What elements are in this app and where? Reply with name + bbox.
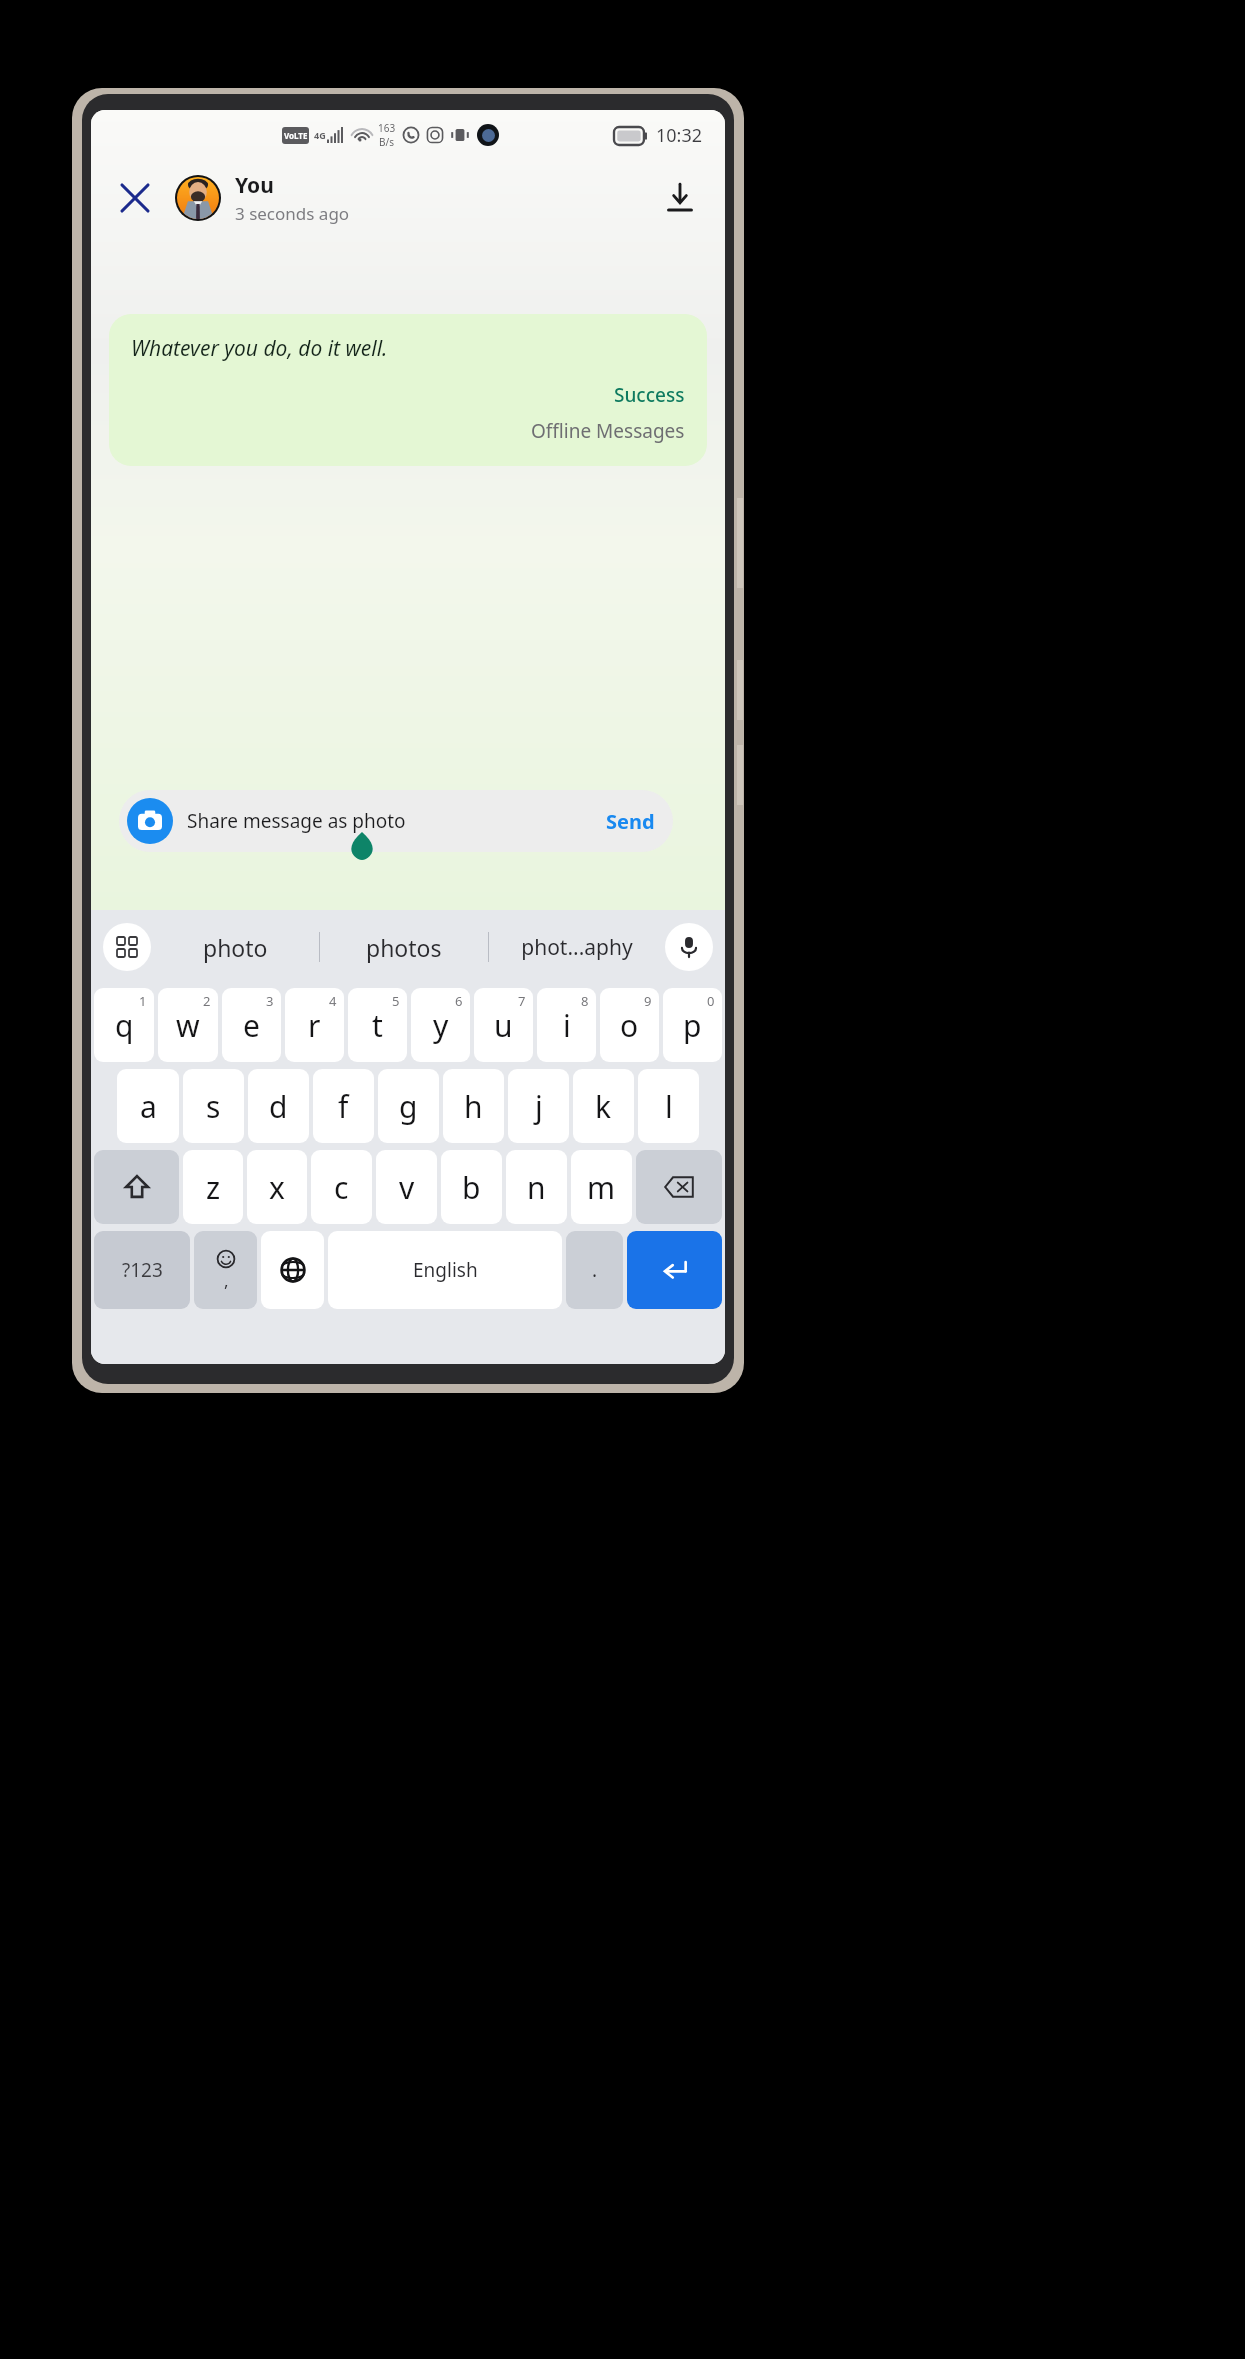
staticText: a — [140, 1086, 157, 1127]
staticText: 4G — [314, 129, 326, 141]
staticText: B/s — [379, 135, 395, 149]
button[interactable]: o — [600, 988, 659, 1062]
staticText: r — [308, 1005, 321, 1046]
staticText: 7 — [518, 992, 526, 1010]
button[interactable]: s — [183, 1069, 244, 1143]
button[interactable]: b — [441, 1150, 502, 1224]
button[interactable]: Shift — [94, 1150, 179, 1224]
button[interactable]: u — [474, 988, 533, 1062]
staticText: l — [665, 1086, 673, 1127]
staticText: English — [413, 1257, 478, 1283]
button[interactable]: k — [573, 1069, 634, 1143]
staticText: x — [269, 1167, 285, 1208]
button[interactable]: y — [411, 988, 470, 1062]
staticText: 8 — [581, 992, 589, 1010]
staticText: 3 seconds ago — [235, 202, 350, 225]
button[interactable]: v — [376, 1150, 437, 1224]
button[interactable]: m — [571, 1150, 632, 1224]
staticText: . — [592, 1257, 598, 1283]
staticText: Success — [614, 382, 685, 408]
staticText: q — [115, 1005, 134, 1046]
staticText: m — [587, 1167, 616, 1208]
staticText: e — [243, 1005, 260, 1046]
staticText: u — [494, 1005, 513, 1046]
button[interactable]: Whatever you do, do it well. — [109, 314, 707, 466]
button[interactable]: Enter — [627, 1231, 722, 1309]
button[interactable]: Share message as photo — [119, 790, 673, 852]
button[interactable]: g — [378, 1069, 439, 1143]
button[interactable]: w — [158, 988, 218, 1062]
button[interactable]: d — [248, 1069, 309, 1143]
button[interactable]: Voice input — [665, 923, 713, 971]
button[interactable]: Send — [600, 808, 661, 835]
staticText: 2 — [203, 992, 211, 1010]
staticText: g — [399, 1086, 418, 1127]
button[interactable]: c — [311, 1150, 372, 1224]
staticText: photos — [366, 932, 442, 963]
staticText: d — [269, 1086, 288, 1127]
button[interactable]: p — [663, 988, 722, 1062]
staticText: 5 — [392, 992, 400, 1010]
staticText: 10:32 — [656, 123, 703, 148]
staticText: s — [206, 1086, 221, 1127]
staticText: photo — [203, 932, 268, 963]
staticText: 6 — [455, 992, 463, 1010]
staticText: t — [372, 1005, 383, 1046]
staticText: y — [433, 1005, 449, 1046]
staticText: f — [338, 1086, 349, 1127]
staticText: Offline Messages — [531, 418, 685, 444]
staticText: ?123 — [122, 1257, 163, 1283]
button[interactable]: h — [443, 1069, 504, 1143]
button[interactable]: n — [506, 1150, 567, 1224]
staticText: VoLTE — [284, 130, 308, 141]
staticText: o — [620, 1005, 639, 1046]
button[interactable]: a — [117, 1069, 179, 1143]
staticText: 3 — [266, 992, 274, 1010]
button[interactable]: Toolbar — [103, 923, 151, 971]
staticText: c — [334, 1167, 349, 1208]
staticText: , — [224, 1269, 229, 1292]
button[interactable]: photo — [151, 910, 319, 984]
button[interactable]: Backspace — [636, 1150, 722, 1224]
staticText: 4 — [329, 992, 337, 1010]
staticText: 163 — [378, 121, 396, 135]
button[interactable]: l — [638, 1069, 699, 1143]
staticText: v — [399, 1167, 415, 1208]
button[interactable]: English — [328, 1231, 562, 1309]
staticText: i — [563, 1005, 571, 1046]
button[interactable]: Download — [653, 171, 707, 225]
button[interactable]: t — [348, 988, 407, 1062]
button[interactable]: f — [313, 1069, 374, 1143]
button[interactable]: photos — [320, 910, 488, 984]
button[interactable]: phot...aphy — [489, 910, 665, 984]
staticText: n — [527, 1167, 546, 1208]
staticText: w — [176, 1005, 200, 1046]
staticText: Share message as photo — [187, 808, 406, 834]
button[interactable]: i — [537, 988, 596, 1062]
button[interactable]: e — [222, 988, 281, 1062]
staticText: z — [206, 1167, 221, 1208]
button[interactable]: z — [183, 1150, 243, 1224]
button[interactable]: q — [94, 988, 154, 1062]
button[interactable]: Language — [261, 1231, 324, 1309]
button[interactable]: Symbols — [94, 1231, 190, 1309]
button[interactable]: Period — [566, 1231, 623, 1309]
staticText: phot...aphy — [521, 933, 633, 962]
staticText: You — [235, 171, 274, 200]
staticText: p — [683, 1005, 702, 1046]
button[interactable]: r — [285, 988, 344, 1062]
staticText: b — [462, 1167, 481, 1208]
button[interactable]: j — [508, 1069, 569, 1143]
staticText: h — [464, 1086, 483, 1127]
staticText: 1 — [139, 992, 147, 1010]
staticText: 0 — [707, 992, 715, 1010]
staticText: 9 — [644, 992, 652, 1010]
button[interactable]: Close — [109, 172, 161, 224]
staticText: Whatever you do, do it well. — [131, 334, 388, 363]
button[interactable]: x — [247, 1150, 307, 1224]
staticText: k — [595, 1086, 612, 1127]
button[interactable]: Emoji — [194, 1231, 257, 1309]
staticText: j — [535, 1086, 543, 1127]
